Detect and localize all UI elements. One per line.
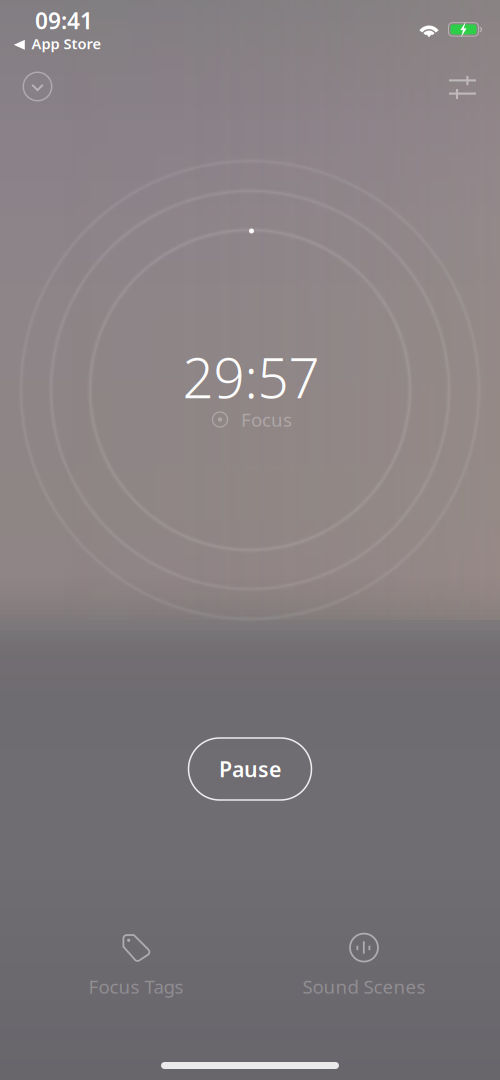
staticText: Pause [219, 755, 281, 783]
button[interactable]: Minimize [14, 63, 60, 109]
staticText: 09:41 [35, 5, 93, 35]
staticText: Sound Scenes [302, 974, 425, 999]
staticText: Focus Tags [88, 974, 183, 999]
button[interactable]: Session settings [439, 64, 485, 110]
staticText: App Store [31, 34, 101, 53]
button[interactable]: Pause [188, 738, 311, 800]
staticText: Focus [241, 407, 292, 432]
staticText: 29:57 [182, 341, 319, 413]
button[interactable]: Focus Tags [61, 931, 211, 1001]
button[interactable]: Sound Scenes [289, 931, 439, 1001]
